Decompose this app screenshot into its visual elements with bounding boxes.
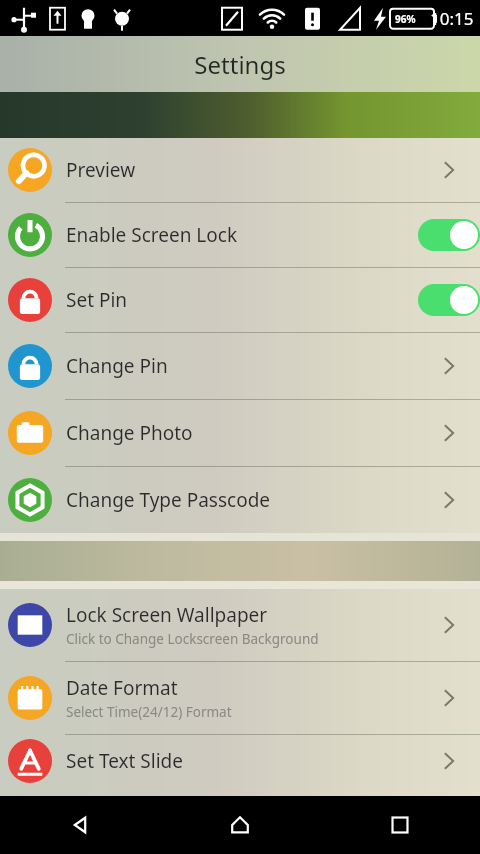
button[interactable]: Home bbox=[160, 796, 320, 854]
staticText: Change Photo bbox=[66, 420, 193, 446]
staticText: Change Type Passcode bbox=[66, 487, 271, 513]
staticText: Click to Change Lockscreen Background bbox=[66, 630, 319, 648]
staticText: Set Text Slide bbox=[66, 748, 184, 774]
button[interactable]: Date Format bbox=[0, 662, 480, 734]
staticText: Lock Screen Wallpaper bbox=[66, 602, 268, 628]
button[interactable]: Set Pin bbox=[0, 268, 480, 332]
button[interactable]: Change Photo bbox=[0, 400, 480, 466]
staticText: Set Pin bbox=[66, 287, 128, 313]
staticText: Change Pin bbox=[66, 353, 168, 379]
button[interactable]: Lock Screen Wallpaper bbox=[0, 589, 480, 661]
button[interactable]: Enable Screen Lock bbox=[0, 203, 480, 267]
staticText: Date Format bbox=[66, 675, 178, 701]
staticText: Select Time(24/12) Format bbox=[66, 703, 232, 721]
button[interactable]: Recent apps bbox=[320, 796, 480, 854]
button[interactable]: Change Pin bbox=[0, 333, 480, 399]
staticText: 10:15 bbox=[430, 7, 474, 30]
button[interactable]: Set Text Slide bbox=[0, 735, 480, 787]
staticText: Settings bbox=[194, 48, 286, 81]
staticText: 96% bbox=[395, 12, 416, 26]
staticText: Enable Screen Lock bbox=[66, 222, 238, 248]
staticText: Preview bbox=[66, 157, 136, 183]
button[interactable]: Change Type Passcode bbox=[0, 467, 480, 533]
button[interactable]: Preview bbox=[0, 138, 480, 202]
button[interactable]: Back bbox=[0, 796, 160, 854]
